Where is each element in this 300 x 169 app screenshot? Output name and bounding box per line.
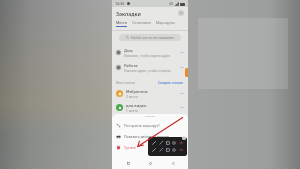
staticText: для видео [126,103,147,108]
button[interactable]: Инструмент 8 [165,147,171,153]
staticText: Найти место по названию [131,35,174,40]
staticText: ••• [180,106,184,110]
staticText: Создать список [158,80,184,84]
button[interactable]: Профиль [178,10,184,16]
staticText: 1 место [126,109,138,113]
button[interactable]: Маршруты [156,19,175,28]
staticText: Остановки [132,20,151,25]
button[interactable]: Инструмент 2 [158,140,164,146]
button[interactable]: Назад [166,158,180,169]
staticText: Показать действия водите [124,134,169,139]
staticText: Укажите адрес, чтобы строить маршрут [124,69,180,73]
button[interactable]: Создать список [158,80,184,84]
button[interactable]: Работа [116,60,184,75]
button[interactable]: Инструмент 9 [171,147,177,153]
staticText: Избранное [126,89,148,94]
staticText: Мои списки [116,80,135,84]
staticText: Места [116,20,127,25]
button[interactable]: Инструмент 3 [165,140,171,146]
staticText: Маршруты [156,20,175,25]
staticText: Нажмите, чтобы задать адрес [124,54,171,58]
button[interactable]: Остановки [132,19,151,28]
button[interactable]: Избранное [116,86,184,101]
staticText: ••• [180,92,184,96]
staticText: Построить маршрут? [124,123,160,128]
button[interactable]: Построить маршрут? [116,120,184,131]
staticText: 2 места [126,95,138,99]
button[interactable]: Инструмент 4 [171,140,177,146]
staticText: Работа [124,63,138,68]
button[interactable]: Недавние [121,158,135,169]
staticText: Закладки [116,10,141,17]
button[interactable]: Инструмент 1 [151,140,157,146]
button[interactable]: Инструмент 7 [158,147,164,153]
button[interactable]: для видео [116,101,184,114]
button[interactable]: Места [116,19,127,28]
button[interactable]: Показать действия водите [116,131,184,142]
button[interactable]: Тут всё [116,142,184,153]
staticText: 14:36 [115,1,125,6]
button[interactable]: Закрыть [182,136,186,140]
staticText: ••• [180,51,184,55]
staticText: Тут всё [124,145,136,150]
button[interactable]: Главная [143,158,157,169]
staticText: 4G [169,2,174,6]
staticText: Дом [124,48,133,53]
button[interactable]: Инструмент 10 [178,147,184,153]
staticText: ••• [180,66,184,70]
button[interactable]: Дом [116,45,184,60]
button[interactable]: Найти место по названию [119,34,181,41]
button[interactable]: Инструмент 6 [151,147,157,153]
button[interactable]: Инструмент 5 [178,140,184,146]
